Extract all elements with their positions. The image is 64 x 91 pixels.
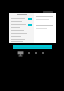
button[interactable]	[11, 41, 32, 42]
button[interactable]: Tab	[43, 11, 53, 15]
button[interactable]	[11, 26, 32, 29]
button[interactable]: Device	[17, 51, 24, 58]
button[interactable]	[11, 32, 32, 35]
button[interactable]	[11, 38, 32, 41]
button[interactable]	[11, 23, 32, 26]
button[interactable]	[13, 45, 52, 49]
button[interactable]	[11, 35, 32, 38]
button[interactable]	[11, 20, 32, 23]
button[interactable]	[9, 13, 34, 43]
button[interactable]	[11, 17, 32, 20]
button[interactable]	[11, 29, 32, 32]
button[interactable]	[34, 13, 56, 43]
